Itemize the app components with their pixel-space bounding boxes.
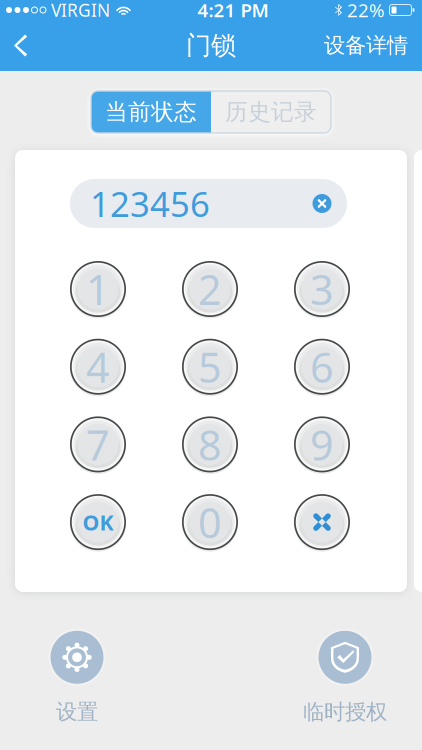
- button[interactable]: 2: [182, 261, 238, 317]
- button[interactable]: 6: [294, 339, 350, 395]
- button[interactable]: 5: [182, 339, 238, 395]
- button[interactable]: OK: [70, 494, 126, 550]
- staticText: VIRGIN: [51, 0, 110, 21]
- button[interactable]: 临时授权: [290, 629, 400, 725]
- staticText: 6: [310, 339, 334, 394]
- staticText: 2: [198, 262, 222, 316]
- button[interactable]: 8: [182, 416, 238, 472]
- button[interactable]: 7: [70, 416, 126, 472]
- staticText: 设备详情: [324, 32, 408, 59]
- staticText: 123456: [90, 180, 210, 226]
- button[interactable]: 设置: [22, 629, 132, 725]
- button[interactable]: Back: [0, 20, 43, 71]
- button[interactable]: 4: [70, 339, 126, 395]
- staticText: 历史记录: [225, 98, 317, 126]
- button[interactable]: 设备详情: [310, 20, 422, 71]
- staticText: 5: [198, 339, 222, 394]
- staticText: 3: [310, 262, 334, 316]
- staticText: 当前状态: [105, 98, 197, 126]
- staticText: OK: [82, 508, 113, 536]
- button[interactable]: 0: [182, 494, 238, 550]
- button[interactable]: 3: [294, 261, 350, 317]
- button[interactable]: 1: [70, 261, 126, 317]
- button[interactable]: 9: [294, 416, 350, 472]
- staticText: 7: [86, 417, 110, 472]
- staticText: 临时授权: [303, 699, 387, 725]
- button[interactable]: 历史记录: [211, 91, 331, 133]
- button[interactable]: 当前状态: [91, 91, 211, 133]
- staticText: 1: [86, 262, 110, 316]
- button[interactable]: Clear: [304, 185, 340, 221]
- staticText: 0: [198, 495, 222, 550]
- staticText: 9: [310, 417, 334, 472]
- staticText: 22%: [347, 0, 385, 22]
- staticText: 8: [198, 417, 222, 472]
- staticText: 4:21 PM: [197, 0, 268, 22]
- staticText: 4: [86, 339, 110, 394]
- staticText: 设置: [56, 699, 98, 725]
- staticText: 门锁: [186, 30, 236, 61]
- button[interactable]: [294, 494, 350, 550]
